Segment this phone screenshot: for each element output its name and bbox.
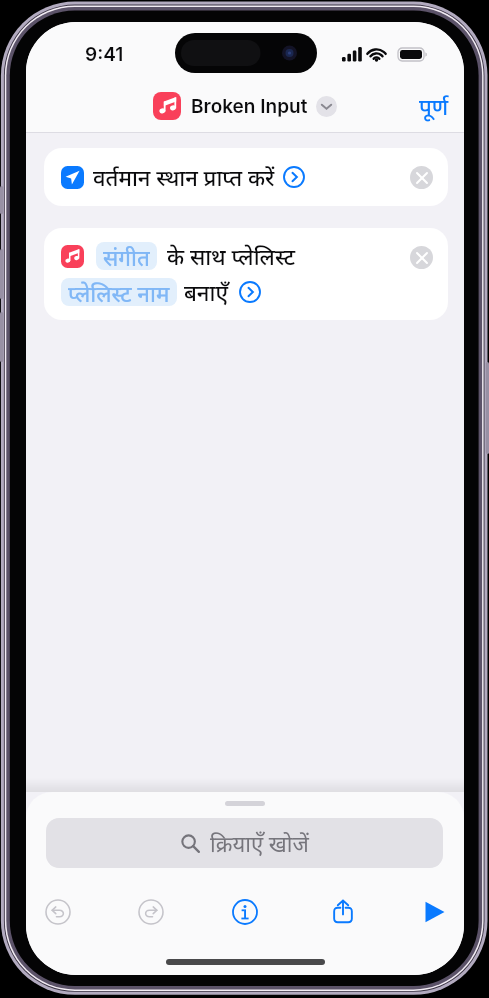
staticText: क्रियाएँ खोजें [210,828,309,858]
staticText: बनाएँ [184,277,228,307]
button[interactable]: Undo [45,899,71,925]
button[interactable]: Remove [410,246,433,269]
button[interactable]: Info [232,899,258,925]
button[interactable]: Share [330,898,356,924]
staticText: वर्तमान स्थान प्राप्त करें [93,162,275,192]
button[interactable]: Broken Input [153,92,337,120]
staticText: Broken Input [191,95,308,118]
button[interactable]: Expand [283,166,305,188]
button[interactable]: संगीत [96,242,157,270]
button[interactable]: Expand [239,281,261,303]
staticText: पूर्ण [419,91,449,121]
staticText: प्लेलिस्ट नाम [68,278,170,306]
staticText: के साथ प्लेलिस्ट [167,241,296,271]
button[interactable]: प्लेलिस्ट नाम [61,278,177,306]
button[interactable]: संगीत [44,228,448,320]
button[interactable]: पूर्ण [419,91,449,121]
button[interactable]: Redo [138,899,164,925]
button[interactable]: Remove [410,166,433,189]
staticText: संगीत [103,242,150,270]
button[interactable]: वर्तमान स्थान प्राप्त करें [44,148,448,206]
staticText: 9:41 [85,43,124,66]
button[interactable]: क्रियाएँ खोजें [46,818,443,868]
button[interactable]: Play [419,899,445,925]
